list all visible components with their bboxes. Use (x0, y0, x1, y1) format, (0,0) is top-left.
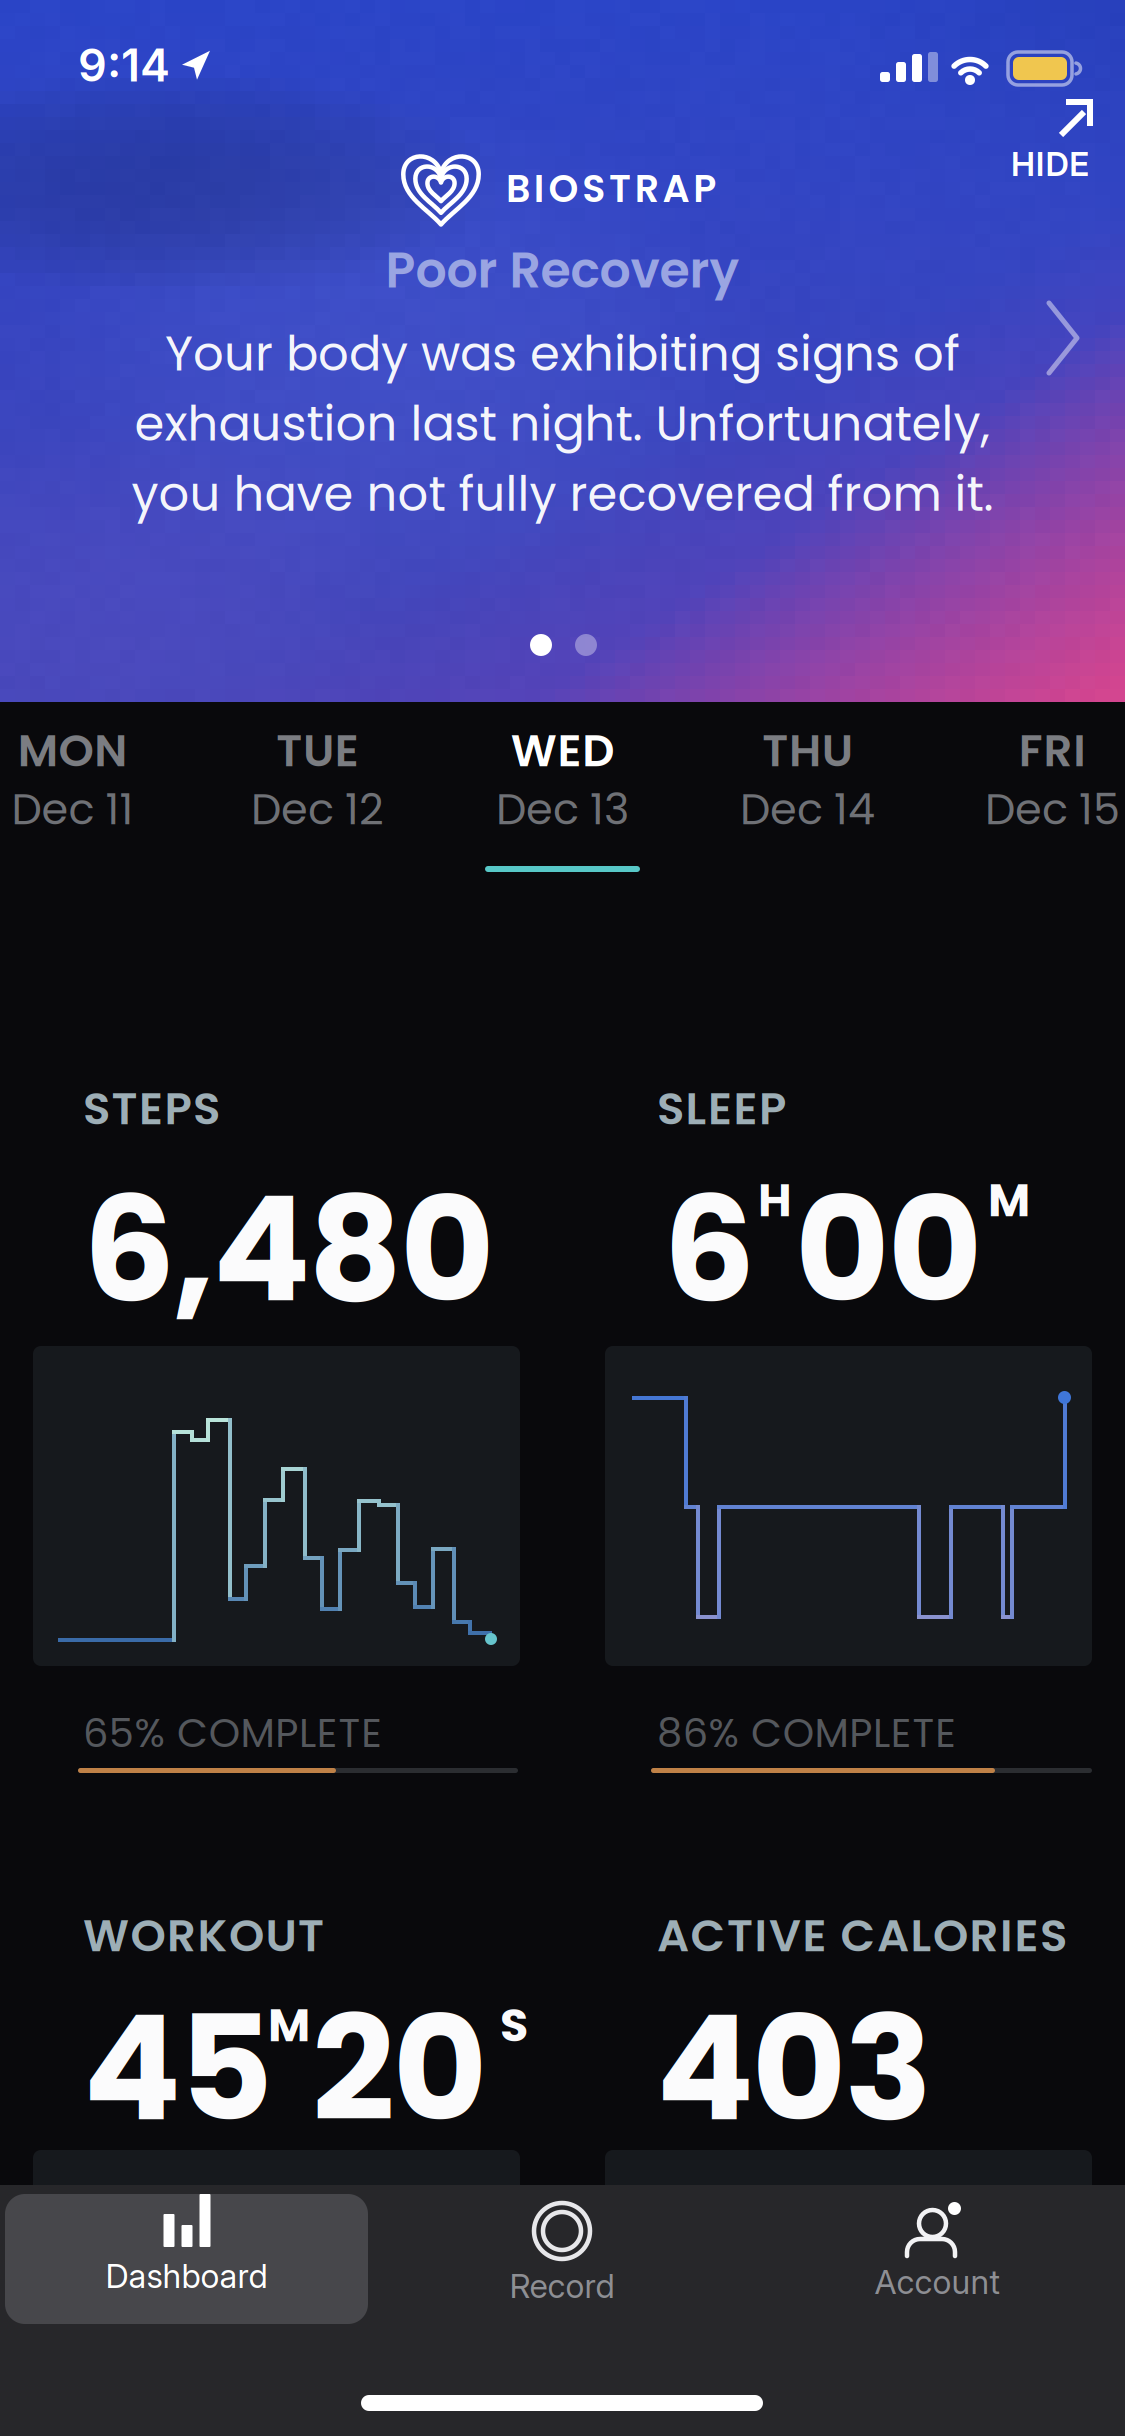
staticText: HIDE (1011, 144, 1089, 184)
staticText: Dec 12 (251, 779, 384, 839)
button[interactable]: MON (0, 710, 195, 880)
button[interactable]: HIDE (1000, 96, 1100, 184)
button[interactable]: Dashboard (5, 2194, 368, 2324)
staticText: MON (18, 719, 127, 782)
staticText: WED (511, 719, 614, 782)
staticText: 6 (663, 1148, 755, 1351)
staticText: M (988, 1168, 1030, 1232)
staticText: Dec 11 (11, 779, 133, 839)
staticText: Record (509, 2266, 614, 2306)
button[interactable] (1046, 300, 1082, 376)
staticText: 9:14 (78, 38, 170, 92)
staticText: 00 (795, 1148, 983, 1351)
staticText: Your body was exhibiting signs of (165, 320, 960, 387)
staticText: Dec 13 (496, 779, 629, 839)
staticText: TUE (276, 719, 359, 782)
staticText: FRI (1019, 719, 1086, 782)
staticText: SLEEP (657, 1077, 786, 1140)
staticText: 45 (83, 1967, 273, 2170)
staticText: STEPS (83, 1077, 220, 1140)
button[interactable]: WED (440, 710, 685, 880)
staticText: S (500, 1993, 528, 2057)
staticText: you have not fully recovered from it. (131, 460, 993, 528)
staticText: THU (762, 719, 853, 782)
staticText: 403 (656, 1967, 932, 2170)
staticText: Account (874, 2262, 999, 2302)
staticText: WORKOUT (83, 1904, 324, 1967)
staticText: M (268, 1993, 310, 2057)
staticText: Dec 14 (740, 779, 875, 839)
button[interactable]: TUE (195, 710, 440, 880)
staticText: exhaustion last night. Unfortunately, (134, 390, 990, 457)
staticText: 65% COMPLETE (83, 1705, 382, 1761)
staticText: H (758, 1168, 792, 1232)
staticText: Dec 15 (985, 779, 1120, 839)
staticText: 6,480 (83, 1148, 495, 1351)
button[interactable]: Record (442, 2202, 682, 2306)
button[interactable]: Account (817, 2202, 1057, 2302)
staticText: BIOSTRAP (506, 162, 716, 215)
button[interactable]: FRI (930, 710, 1125, 880)
staticText: Poor Recovery (385, 236, 739, 305)
staticText: 86% COMPLETE (657, 1705, 956, 1761)
staticText: Dashboard (105, 2256, 267, 2296)
staticText: 20 (312, 1967, 488, 2170)
staticText: ACTIVE CALORIES (657, 1904, 1067, 1967)
button[interactable]: THU (685, 710, 930, 880)
